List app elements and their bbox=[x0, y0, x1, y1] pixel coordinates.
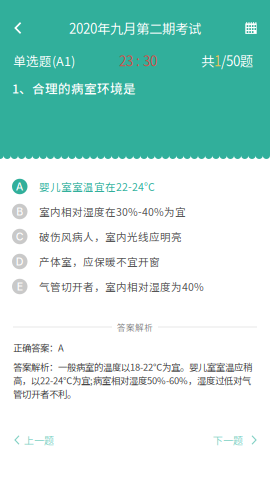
button[interactable]: 下一题 bbox=[201, 422, 270, 458]
staticText: 2020年九月第二期考试 bbox=[69, 18, 201, 38]
button[interactable]: E bbox=[0, 274, 270, 299]
staticText: 产体室，应保暖不宜开窗 bbox=[39, 254, 160, 269]
staticText: 答案解析 bbox=[117, 321, 153, 333]
staticText: 1 bbox=[214, 51, 221, 70]
button[interactable]: 上一题 bbox=[0, 422, 66, 458]
staticText: E bbox=[17, 280, 23, 293]
staticText: 婴儿室室温宜在22-24°C bbox=[39, 179, 155, 194]
staticText: 答案解析：一般病室的温度以18-22℃为宜。婴儿室室温应稍高，以22-24℃为宜… bbox=[13, 360, 252, 400]
staticText: 上一题 bbox=[24, 433, 54, 447]
staticText: 下一题 bbox=[213, 433, 243, 447]
staticText: 破伤风病人，室内光线应明亮 bbox=[39, 229, 182, 244]
staticText: 1、合理的病室环境是 bbox=[12, 79, 136, 97]
staticText: A bbox=[16, 180, 24, 193]
staticText: 共 bbox=[201, 51, 214, 70]
staticText: 23 : 30 bbox=[119, 51, 157, 70]
staticText: D bbox=[16, 255, 24, 268]
button[interactable]: A bbox=[0, 174, 270, 199]
button[interactable]: C bbox=[0, 224, 270, 249]
button[interactable]: Answer sheet bbox=[234, 9, 268, 47]
staticText: C bbox=[16, 230, 24, 243]
button[interactable]: D bbox=[0, 249, 270, 274]
button[interactable]: B bbox=[0, 199, 270, 224]
staticText: 题 bbox=[240, 51, 253, 70]
button[interactable]: Back bbox=[2, 9, 34, 47]
staticText: 正确答案：A bbox=[13, 341, 64, 354]
staticText: 室内相对湿度在30%-40%为宜 bbox=[39, 204, 186, 219]
staticText: /50 bbox=[221, 51, 240, 70]
staticText: B bbox=[16, 205, 23, 218]
staticText: 单选题(A1) bbox=[13, 51, 75, 70]
staticText: 气管切开者，室内相对湿度为40% bbox=[39, 279, 204, 294]
